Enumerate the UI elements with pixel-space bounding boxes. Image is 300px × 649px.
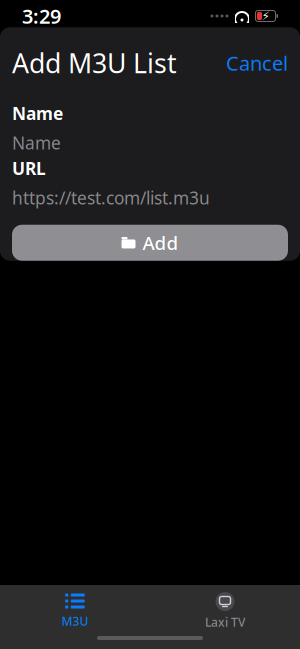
staticText: Add M3U List xyxy=(12,45,177,81)
staticText: 3:29 xyxy=(22,3,61,29)
staticText: Name xyxy=(12,131,61,154)
staticText: Name xyxy=(12,102,63,125)
staticText: Cancel xyxy=(226,50,288,76)
button[interactable]: Cancel xyxy=(226,50,288,76)
staticText: Add xyxy=(142,230,178,255)
staticText: URL xyxy=(12,157,46,180)
staticText: https://test.com/list.m3u xyxy=(12,186,210,209)
staticText: M3U xyxy=(61,613,88,629)
button[interactable]: M3U xyxy=(0,589,150,633)
staticText: ⚡︎ xyxy=(261,9,269,23)
button[interactable]: Name xyxy=(0,135,300,151)
button[interactable]: Add xyxy=(0,225,300,261)
staticText: Laxi TV xyxy=(205,614,245,630)
button[interactable]: Laxi TV xyxy=(150,589,300,633)
button[interactable]: https://test.com/list.m3u xyxy=(0,190,300,206)
